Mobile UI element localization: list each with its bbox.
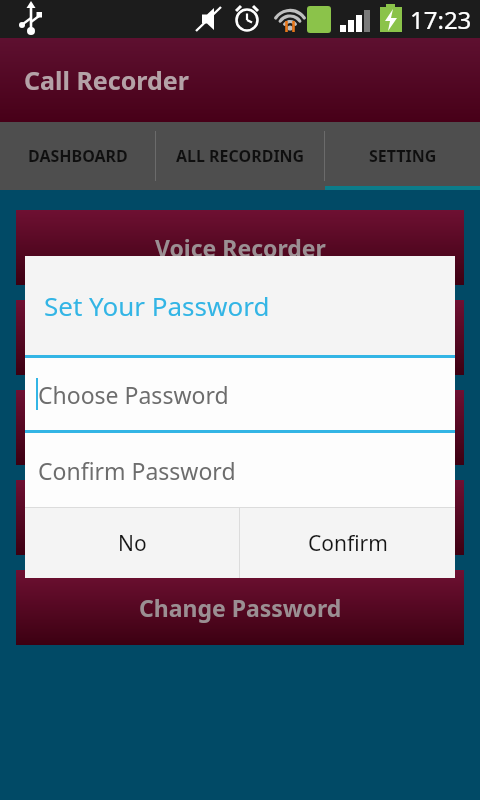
staticText: Rate App <box>188 412 292 443</box>
button[interactable]: Rate App <box>16 390 464 465</box>
staticText: Set Your Password <box>44 288 270 323</box>
button[interactable]: ALL RECORDING <box>156 122 324 190</box>
staticText: Call Recorder <box>24 63 189 97</box>
staticText: Choose Password <box>38 379 229 410</box>
staticText: ALL RECORDING <box>176 145 305 167</box>
staticText: More App <box>185 502 296 533</box>
staticText: Change Password <box>139 592 342 623</box>
staticText: DASHBOARD <box>28 145 128 167</box>
staticText: SETTING <box>369 145 437 167</box>
button[interactable]: No <box>25 508 239 578</box>
button[interactable]: SETTING <box>325 122 480 190</box>
button[interactable]: DASHBOARD <box>0 122 155 190</box>
button[interactable]: Confirm <box>240 508 455 578</box>
button[interactable]: Share App <box>16 300 464 375</box>
staticText: Voice Recorder <box>155 232 326 263</box>
button[interactable]: Voice Recorder <box>16 210 464 285</box>
staticText: Confirm <box>308 529 388 558</box>
button[interactable]: More App <box>16 480 464 555</box>
staticText: 17:23 <box>410 3 472 36</box>
button[interactable]: Change Password <box>16 570 464 645</box>
staticText: Confirm Password <box>38 455 236 486</box>
staticText: No <box>118 529 147 558</box>
